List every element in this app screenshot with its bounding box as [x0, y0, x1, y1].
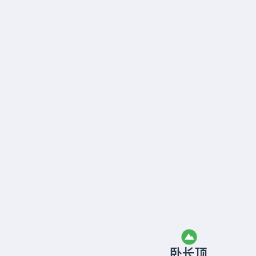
- button[interactable]: 卧长顶 scenic spot marker: [169, 228, 210, 256]
